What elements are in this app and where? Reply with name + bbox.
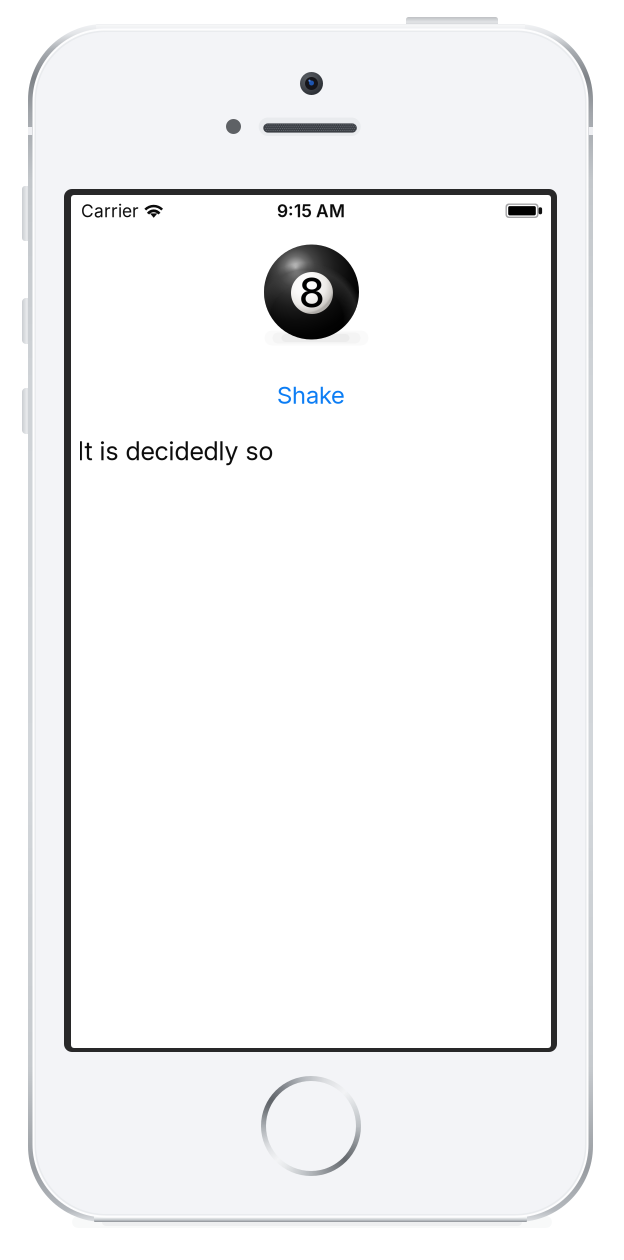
staticText: 8: [299, 267, 324, 317]
staticText: Carrier: [81, 200, 139, 221]
staticText: It is decidedly so: [77, 436, 273, 466]
staticText: 9:15 AM: [277, 200, 345, 221]
staticText: Shake: [277, 380, 345, 409]
button[interactable]: Shake: [231, 375, 391, 415]
